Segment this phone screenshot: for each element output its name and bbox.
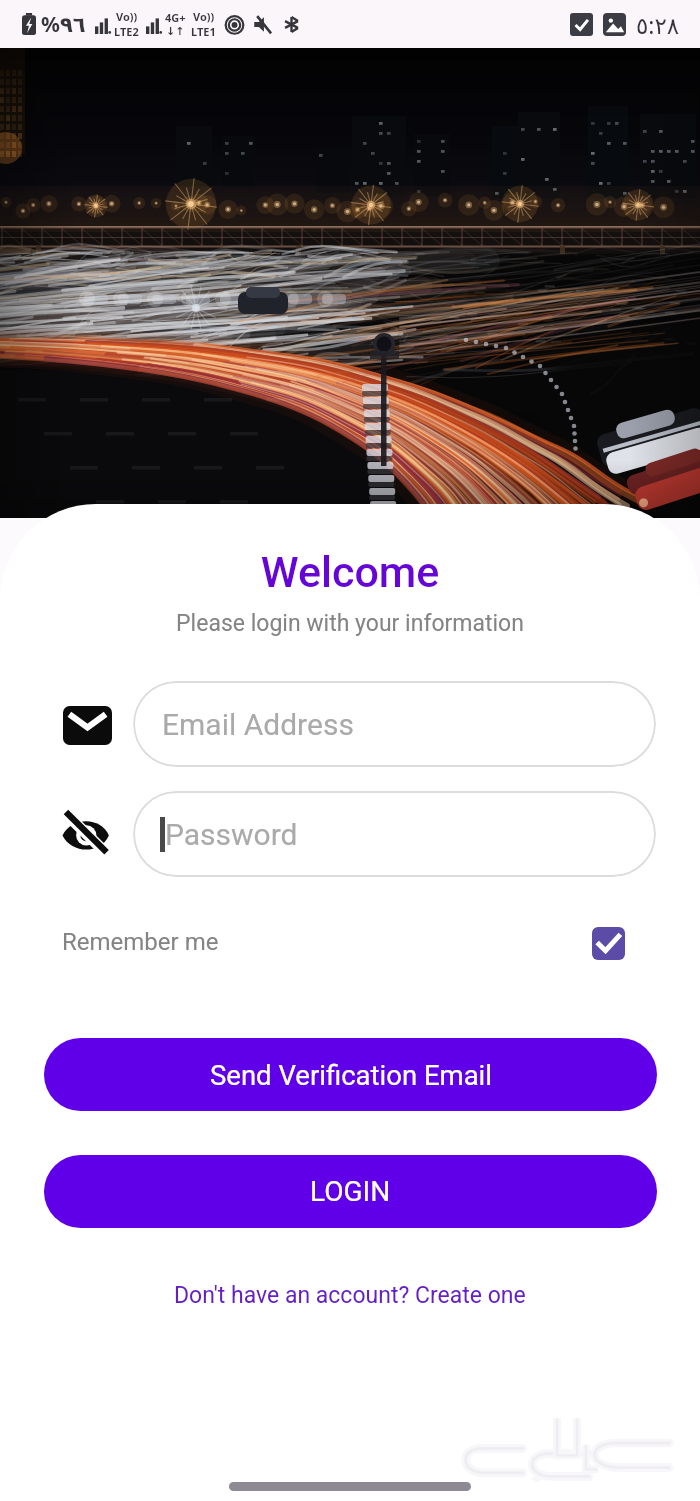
button[interactable]: Remember me xyxy=(62,928,219,956)
button[interactable]: Don't have an account? Create one xyxy=(174,1282,526,1309)
staticText: LOGIN xyxy=(310,1175,391,1208)
button[interactable]: Show password xyxy=(59,810,117,857)
staticText: Please login with your information xyxy=(0,610,700,637)
button[interactable]: Email Address xyxy=(133,681,656,767)
staticText: Vo)) xyxy=(116,9,138,24)
staticText: Vo)) xyxy=(193,9,215,24)
button[interactable]: LOGIN xyxy=(44,1155,657,1228)
staticText: LTE2 xyxy=(114,24,139,39)
staticText: Welcome xyxy=(0,547,700,597)
staticText: 4G+ xyxy=(165,10,186,25)
button[interactable]: Password xyxy=(133,791,656,877)
button[interactable]: Email xyxy=(63,706,112,745)
staticText: Email Address xyxy=(162,707,354,742)
staticText: %٩٦ xyxy=(41,10,86,39)
button[interactable]: Send Verification Email xyxy=(44,1038,657,1111)
staticText: ٥:٢٨ xyxy=(636,9,680,40)
staticText: Remember me xyxy=(62,928,219,956)
staticText: ↓↑ xyxy=(166,25,185,38)
staticText: LTE1 xyxy=(191,24,216,39)
staticText: Password xyxy=(165,817,298,852)
button[interactable]: Remember me checkbox xyxy=(592,927,625,960)
staticText: Send Verification Email xyxy=(210,1059,492,1091)
